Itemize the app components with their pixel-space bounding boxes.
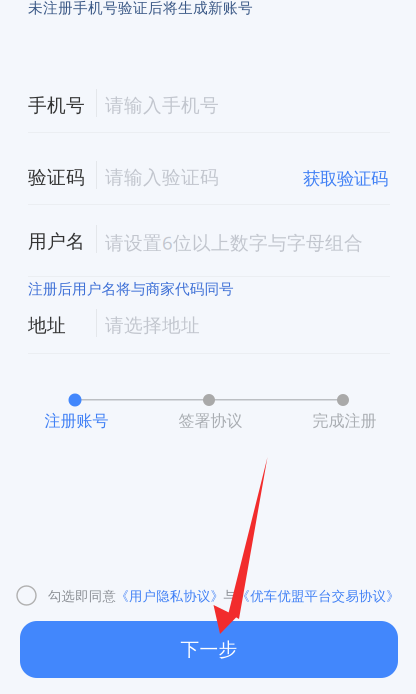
staticText: 下一步 (180, 638, 237, 661)
button[interactable]: 获取验证码 (303, 168, 388, 189)
staticText: 完成注册 (312, 411, 376, 431)
button[interactable]: 下一步 (20, 621, 398, 678)
staticText: 《优车优盟平台交易协议》 (237, 588, 399, 604)
staticText: 注册后用户名将与商家代码同号 (28, 280, 234, 298)
button[interactable]: 《用户隐私协议》 (115, 588, 224, 604)
staticText: 未注册手机号验证后将生成新账号 (28, 0, 253, 17)
button[interactable]: 《优车优盟平台交易协议》 (237, 588, 399, 604)
staticText: 验证码 (28, 166, 85, 189)
staticText: 请输入手机号 (105, 94, 219, 117)
staticText: 与 (224, 588, 237, 604)
staticText: 用户名 (28, 230, 85, 253)
staticText: 勾选即同意 (48, 588, 115, 604)
staticText: 《用户隐私协议》 (115, 588, 224, 604)
staticText: 注册账号 (44, 411, 108, 431)
staticText: 请输入验证码 (105, 166, 219, 189)
staticText: 请设置6位以上数字与字母组合 (105, 230, 363, 255)
staticText: 地址 (28, 314, 66, 337)
staticText: 获取验证码 (303, 168, 388, 189)
staticText: 手机号 (28, 94, 85, 117)
button[interactable]: 勾选同意协议 (17, 586, 36, 605)
staticText: 请选择地址 (105, 314, 200, 337)
staticText: 签署协议 (178, 411, 242, 431)
